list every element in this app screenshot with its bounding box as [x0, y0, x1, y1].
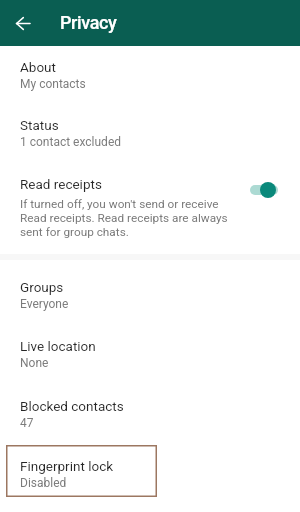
staticText: Live location [20, 338, 96, 354]
button[interactable]: Fingerprint lock [0, 449, 300, 496]
staticText: Read receipts [20, 176, 102, 192]
staticText: Blocked contacts [20, 398, 124, 414]
button[interactable]: Read receipts [0, 167, 300, 247]
staticText: Privacy [60, 12, 117, 33]
staticText: 47 [20, 416, 34, 430]
staticText: Disabled [20, 476, 67, 490]
staticText: Fingerprint lock [20, 458, 114, 474]
staticText: Everyone [20, 297, 69, 311]
button[interactable]: Blocked contacts [0, 389, 300, 436]
staticText: About [20, 59, 56, 75]
staticText: 1 contact excluded [20, 135, 122, 149]
staticText: If turned off, you won't send or receive… [20, 197, 236, 239]
staticText: Groups [20, 279, 64, 295]
button[interactable]: Status [0, 108, 300, 155]
staticText: Status [20, 117, 59, 133]
button[interactable]: Back [6, 6, 40, 40]
button[interactable]: Read receipts toggle [244, 175, 284, 203]
button[interactable]: About [0, 50, 300, 97]
button[interactable]: Groups [0, 270, 300, 317]
staticText: My contacts [20, 77, 86, 91]
button[interactable]: Live location [0, 329, 300, 376]
staticText: None [20, 356, 49, 370]
